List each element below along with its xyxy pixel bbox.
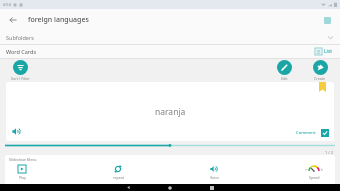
button[interactable]: Back [120, 184, 136, 191]
button[interactable]: Bookmark [319, 82, 326, 92]
staticText: 1 / 2 [325, 150, 334, 155]
staticText: foreign languages [28, 15, 89, 25]
staticText: List [324, 48, 333, 55]
button[interactable]: Mark learned [321, 129, 329, 137]
button[interactable] [5, 141, 335, 150]
button[interactable]: Bookmark [6, 82, 334, 141]
button[interactable]: Recents [204, 184, 220, 191]
button[interactable]: Back [6, 13, 20, 27]
staticText: Create [314, 76, 326, 81]
button[interactable]: Play [9, 164, 35, 181]
button[interactable]: Speed [297, 163, 331, 181]
button[interactable]: Subfolders [0, 31, 340, 44]
staticText: 4:54 [3, 2, 11, 7]
staticText: Voice [210, 175, 219, 180]
button[interactable]: Sort and Filter [3, 60, 37, 81]
staticText: naranja [155, 106, 186, 118]
staticText: Speed [309, 175, 320, 180]
button[interactable]: Voice [201, 164, 227, 181]
staticText: Subfolders [6, 34, 34, 41]
staticText: Edit [281, 76, 288, 81]
button[interactable]: Comment [296, 130, 316, 136]
button[interactable]: List [314, 48, 334, 55]
staticText: Sort / Filter [11, 76, 30, 81]
button[interactable]: Repeat [105, 164, 131, 181]
button[interactable]: Folder options [320, 13, 334, 27]
staticText: Slideshow Menu [9, 157, 37, 162]
button[interactable]: Edit [267, 60, 301, 81]
button[interactable]: Play audio [10, 125, 22, 137]
staticText: Play [19, 175, 26, 180]
button[interactable]: Home [162, 184, 178, 191]
staticText: Word Cards [6, 48, 37, 55]
staticText: repeat [113, 175, 124, 180]
button[interactable]: Create [303, 60, 337, 81]
